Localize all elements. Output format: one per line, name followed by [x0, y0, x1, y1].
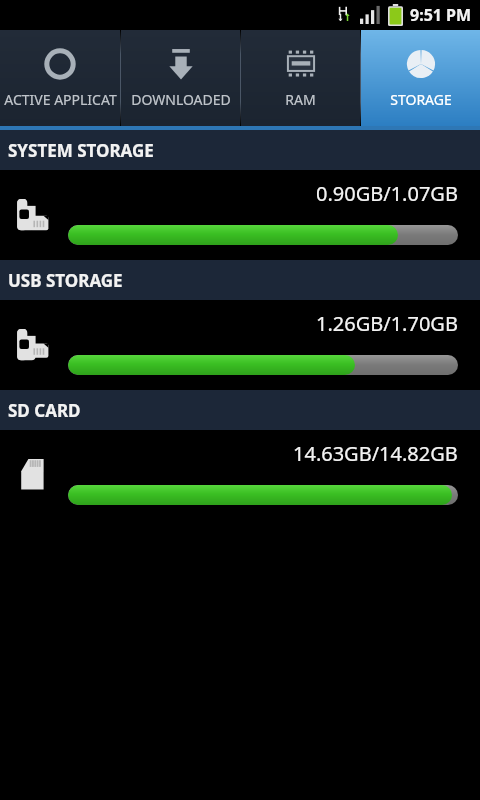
- staticText: 0.90GB/1.07GB: [316, 180, 458, 207]
- button[interactable]: ACTIVE APPLICAT: [0, 30, 120, 126]
- staticText: STORAGE: [390, 90, 452, 109]
- button[interactable]: DOWNLOADED: [121, 30, 240, 126]
- button[interactable]: STORAGE: [361, 30, 480, 126]
- staticText: USB STORAGE: [8, 269, 123, 292]
- staticText: 14.63GB/14.82GB: [293, 440, 458, 467]
- staticText: 1.26GB/1.70GB: [316, 310, 458, 337]
- staticText: RAM: [285, 90, 316, 109]
- staticText: SYSTEM STORAGE: [8, 139, 154, 162]
- staticText: SD CARD: [8, 399, 81, 422]
- staticText: ACTIVE APPLICAT: [4, 90, 117, 109]
- staticText: 9:51 PM: [410, 4, 472, 26]
- button[interactable]: USB STORAGE: [0, 260, 480, 390]
- button[interactable]: RAM: [241, 30, 360, 126]
- button[interactable]: SYSTEM STORAGE: [0, 130, 480, 260]
- staticText: DOWNLOADED: [131, 90, 231, 109]
- button[interactable]: SD CARD: [0, 390, 480, 520]
